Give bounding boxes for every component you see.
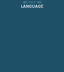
staticText: Select One of These bbox=[22, 1, 41, 4]
staticText: LANGUAGE bbox=[21, 4, 43, 9]
